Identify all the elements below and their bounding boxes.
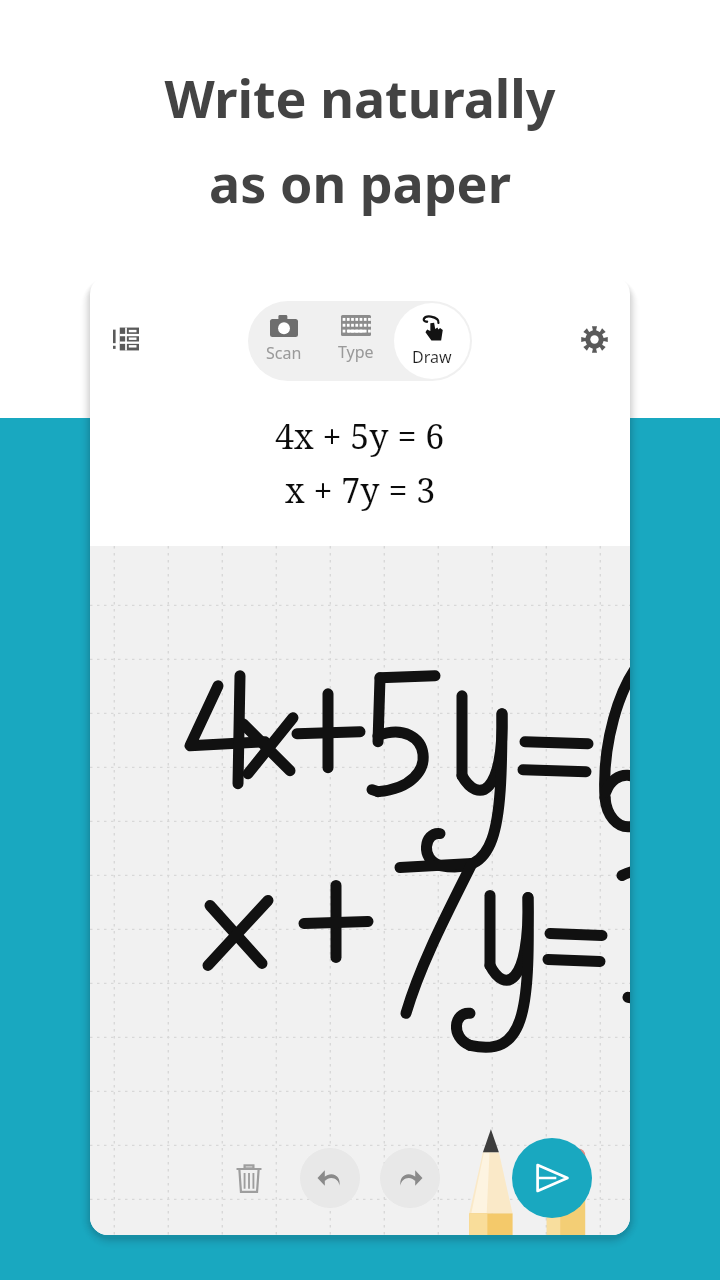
button[interactable]: Scan xyxy=(248,301,320,381)
button[interactable]: History xyxy=(98,311,154,367)
staticText: Write naturally xyxy=(164,62,556,133)
button[interactable]: Settings xyxy=(566,311,622,367)
button[interactable]: Eraser xyxy=(542,1143,590,1235)
button[interactable]: Undo xyxy=(300,1148,360,1208)
staticText: 4x + 5y = 6 xyxy=(275,413,445,459)
button[interactable]: Pencil xyxy=(458,1127,528,1235)
staticText: Scan xyxy=(266,342,302,364)
button[interactable]: Redo xyxy=(380,1148,440,1208)
button[interactable]: Send xyxy=(512,1138,592,1218)
staticText: as on paper xyxy=(209,147,511,218)
staticText: Type xyxy=(338,341,374,363)
staticText: Draw xyxy=(412,346,452,368)
staticText: x + 7y = 3 xyxy=(285,467,436,513)
button[interactable]: Type xyxy=(320,301,392,381)
button[interactable]: Draw xyxy=(394,303,470,379)
button[interactable]: Delete xyxy=(220,1149,278,1207)
